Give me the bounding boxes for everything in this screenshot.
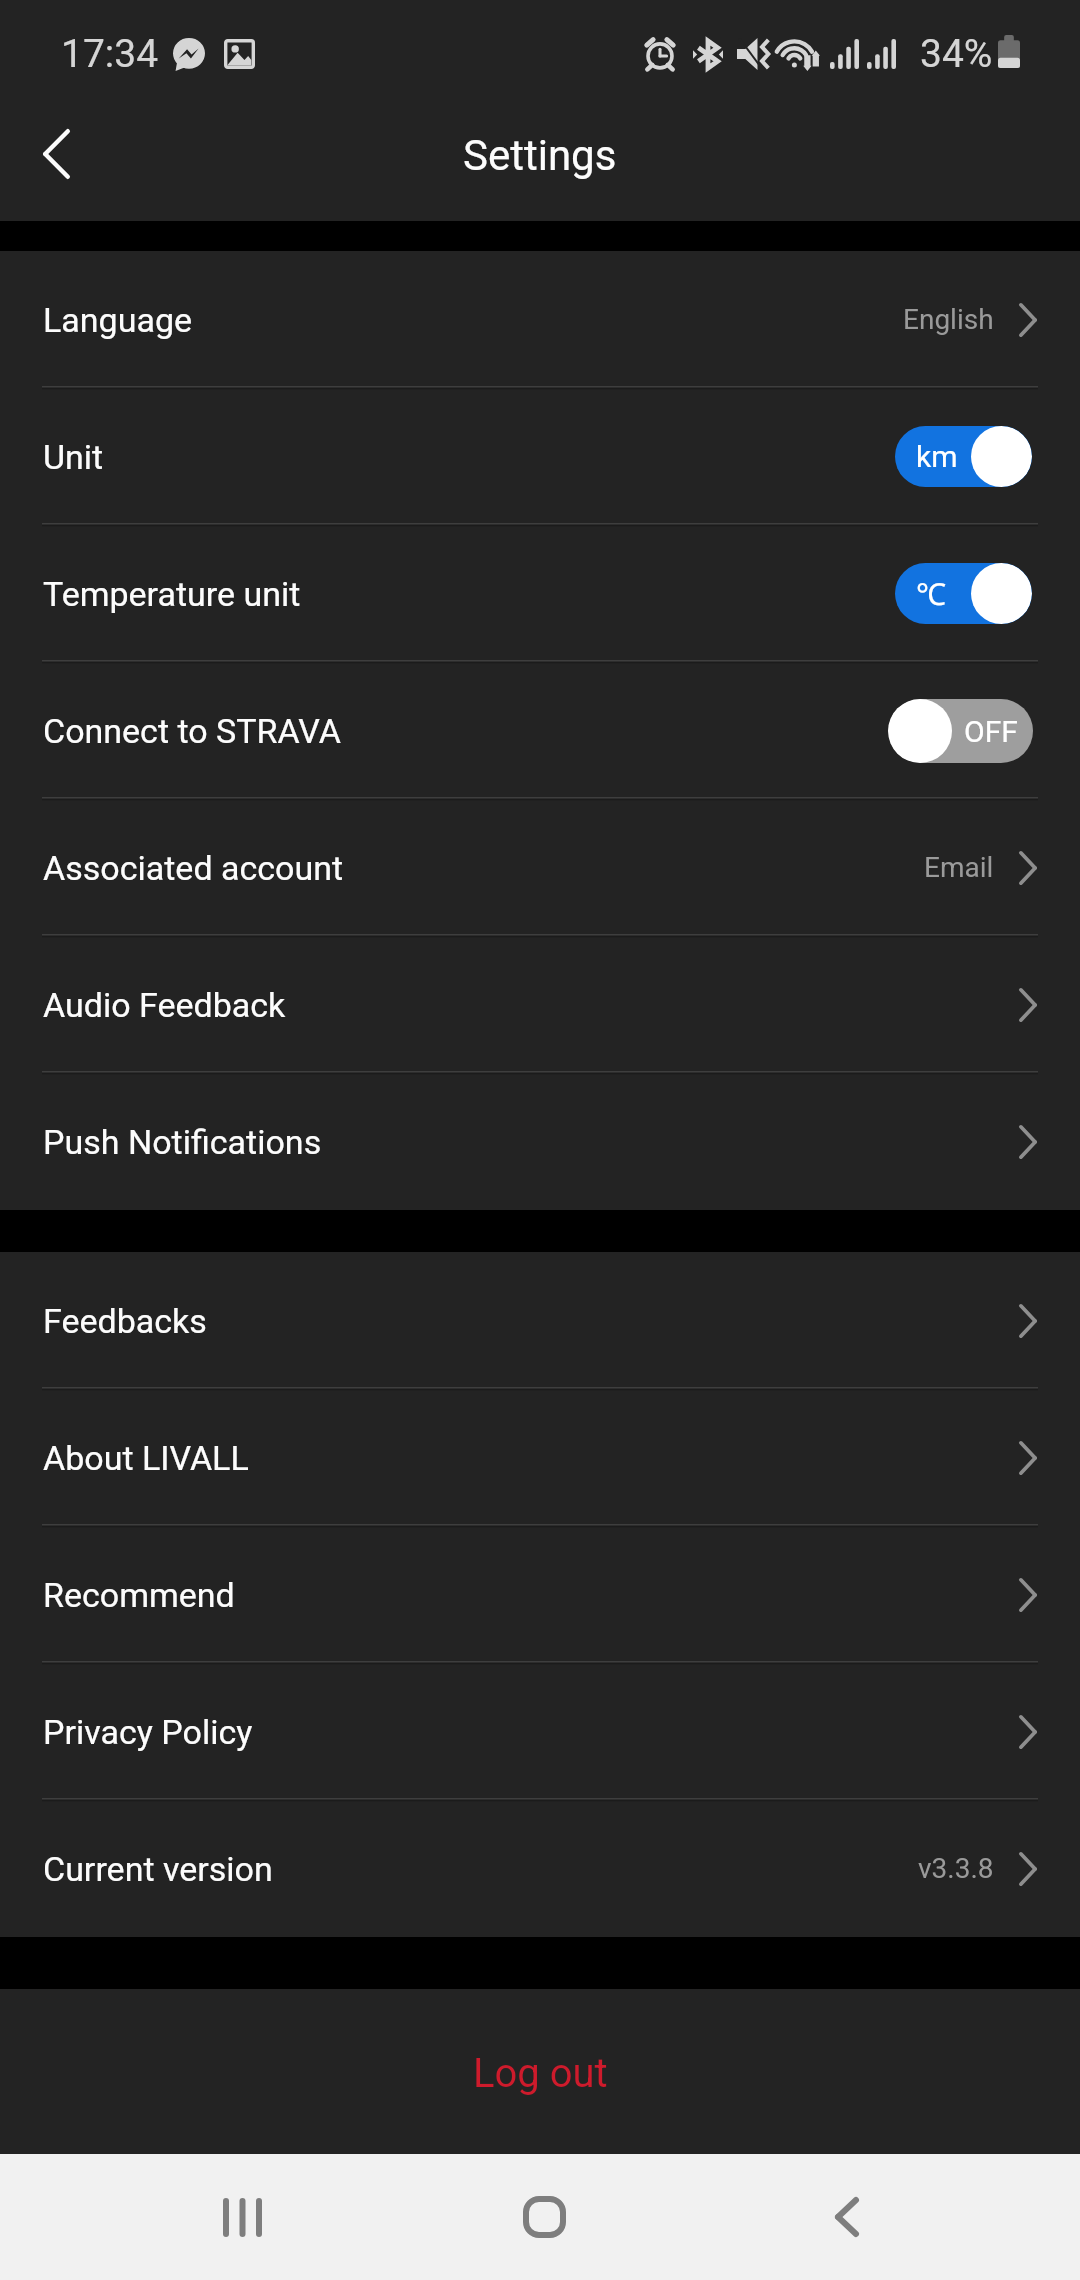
staticText: Current version xyxy=(43,1849,273,1889)
button[interactable]: Recommend xyxy=(0,1526,1080,1663)
staticText: 17:34 xyxy=(61,31,159,77)
staticText: Temperature unit xyxy=(43,574,301,614)
button[interactable]: Push Notifications xyxy=(0,1073,1080,1210)
button[interactable]: ℃ xyxy=(895,563,1032,624)
staticText: Settings xyxy=(463,131,617,180)
staticText: ℃ xyxy=(916,573,946,614)
staticText: Privacy Policy xyxy=(43,1712,253,1752)
button[interactable]: Associated account xyxy=(0,799,1080,936)
staticText: Log out xyxy=(473,2050,608,2097)
button[interactable]: Recent apps xyxy=(182,2157,302,2277)
button[interactable]: Log out xyxy=(0,1989,1080,2154)
staticText: Feedbacks xyxy=(43,1301,207,1341)
button[interactable]: Home xyxy=(484,2157,604,2277)
button[interactable]: Back xyxy=(787,2157,907,2277)
button[interactable]: Back xyxy=(16,114,96,194)
button[interactable]: Current version xyxy=(0,1800,1080,1937)
staticText: About LIVALL xyxy=(43,1438,249,1478)
staticText: Push Notifications xyxy=(43,1122,322,1162)
staticText: Connect to STRAVA xyxy=(43,711,341,751)
button[interactable]: About LIVALL xyxy=(0,1389,1080,1526)
button[interactable]: Feedbacks xyxy=(0,1252,1080,1389)
staticText: Email xyxy=(924,851,994,884)
staticText: Audio Feedback xyxy=(43,985,286,1025)
button[interactable]: Connect to STRAVA xyxy=(0,662,1080,799)
staticText: Recommend xyxy=(43,1575,235,1615)
staticText: OFF xyxy=(964,714,1018,749)
button[interactable]: Language xyxy=(0,251,1080,388)
staticText: English xyxy=(903,303,994,336)
staticText: Language xyxy=(43,300,193,340)
staticText: Unit xyxy=(43,437,104,477)
button[interactable]: Audio Feedback xyxy=(0,936,1080,1073)
staticText: 34% xyxy=(920,31,993,77)
button[interactable]: OFF xyxy=(888,699,1033,763)
staticText: v3.3.8 xyxy=(918,1852,994,1885)
staticText: km xyxy=(916,439,958,474)
button[interactable]: Privacy Policy xyxy=(0,1663,1080,1800)
button[interactable]: Temperature unit xyxy=(0,525,1080,662)
staticText: Associated account xyxy=(43,848,344,888)
button[interactable]: km xyxy=(895,426,1032,487)
button[interactable]: Unit xyxy=(0,388,1080,525)
